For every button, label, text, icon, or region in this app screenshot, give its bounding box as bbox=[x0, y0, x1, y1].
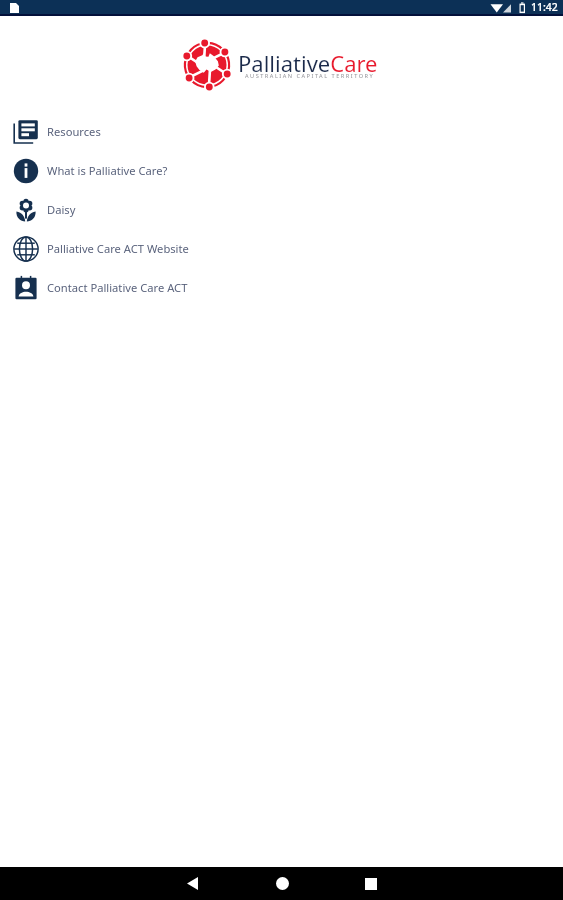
staticText: PalliativeCare bbox=[238, 48, 378, 78]
button[interactable]: Back bbox=[162, 867, 222, 900]
staticText: AUSTRALIAN CAPITAL TERRITORY bbox=[245, 72, 375, 80]
button[interactable]: Palliative Care ACT Website bbox=[0, 229, 563, 268]
button[interactable]: Recents bbox=[341, 867, 401, 900]
staticText: Palliative Care ACT Website bbox=[47, 241, 189, 256]
button[interactable]: Home bbox=[252, 867, 312, 900]
button[interactable]: What is Palliative Care? bbox=[0, 151, 563, 190]
staticText: 11:42 bbox=[531, 0, 558, 14]
button[interactable]: Resources bbox=[0, 112, 563, 151]
staticText: What is Palliative Care? bbox=[47, 163, 168, 178]
staticText: Contact Palliative Care ACT bbox=[47, 280, 188, 295]
button[interactable]: Contact Palliative Care ACT bbox=[0, 268, 563, 307]
staticText: Resources bbox=[47, 124, 101, 139]
button[interactable]: Daisy bbox=[0, 190, 563, 229]
staticText: Daisy bbox=[47, 202, 76, 217]
